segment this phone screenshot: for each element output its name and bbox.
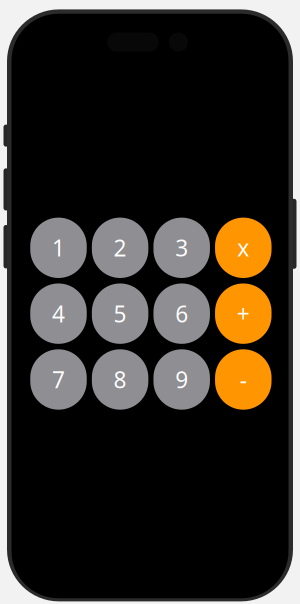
staticText: 2 (114, 233, 127, 263)
button[interactable]: 6 (153, 283, 210, 344)
staticText: 3 (175, 233, 188, 263)
staticText: 9 (175, 364, 188, 394)
staticText: - (240, 364, 247, 394)
button[interactable]: 9 (153, 349, 210, 410)
button[interactable]: - (215, 349, 271, 410)
button[interactable]: + (215, 283, 271, 344)
staticText: + (237, 299, 250, 329)
staticText: 5 (114, 299, 127, 329)
button[interactable]: 1 (30, 218, 87, 278)
button[interactable]: x (215, 218, 271, 278)
staticText: 4 (52, 299, 65, 329)
staticText: 6 (175, 299, 188, 329)
button[interactable]: 2 (92, 218, 148, 278)
button[interactable]: 4 (30, 283, 87, 344)
staticText: x (237, 233, 249, 263)
staticText: 1 (52, 233, 65, 263)
button[interactable]: 5 (92, 283, 148, 344)
button[interactable]: 8 (92, 349, 148, 410)
button[interactable]: 3 (153, 218, 210, 278)
staticText: 8 (114, 364, 127, 394)
button[interactable]: 7 (30, 349, 87, 410)
staticText: 7 (52, 364, 65, 394)
